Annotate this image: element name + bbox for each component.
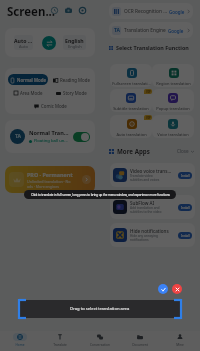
- staticText: Normal Mode: [17, 77, 46, 83]
- staticText: Normal Transla...: [29, 129, 71, 137]
- button[interactable]: TA: [109, 22, 193, 38]
- staticText: PRO · Permanent: [27, 171, 73, 178]
- staticText: Auto: [19, 44, 28, 49]
- staticText: SubFlow AI: [130, 200, 155, 206]
- button[interactable]: Swap languages: [42, 36, 56, 50]
- staticText: Auto translation: [116, 132, 147, 137]
- staticText: Google: [168, 28, 184, 34]
- button[interactable]: Close: [177, 148, 194, 154]
- button[interactable]: Confirm: [158, 284, 168, 294]
- staticText: Conversation: [90, 343, 110, 347]
- button[interactable]: Video voice trans...: [110, 163, 195, 187]
- staticText: Voice translation: [157, 132, 189, 137]
- staticText: Area Mode: [20, 90, 43, 96]
- staticText: VIP: [146, 90, 151, 94]
- staticText: ads · More engines: [27, 184, 59, 189]
- button[interactable]: Area Mode: [8, 87, 48, 98]
- button[interactable]: Reading Mode: [50, 74, 92, 85]
- staticText: VIP: [146, 116, 151, 120]
- staticText: Install: [181, 174, 190, 178]
- staticText: Hide notifications: [130, 228, 169, 234]
- staticText: Auto (...: [14, 37, 33, 44]
- staticText: Screen...: [7, 4, 56, 20]
- button[interactable]: Comic Mode: [29, 100, 71, 111]
- button[interactable]: History: [48, 4, 61, 17]
- staticText: Document: [132, 343, 148, 347]
- staticText: Fullscreen translati...: [112, 81, 151, 86]
- staticText: Install: [181, 206, 190, 210]
- button[interactable]: Normal Mode: [8, 74, 48, 85]
- staticText: English: [68, 44, 82, 49]
- button[interactable]: Region translation: [152, 64, 194, 87]
- button[interactable]: OCR Recognition ...: [109, 3, 193, 19]
- button[interactable]: Auto (...: [14, 35, 33, 50]
- staticText: Select Translation Function: [116, 44, 189, 51]
- staticText: Translation Engine: [124, 27, 166, 34]
- staticText: Comic Mode: [41, 103, 67, 109]
- button[interactable]: PRO · Permanent: [5, 166, 95, 193]
- button[interactable]: Install: [178, 232, 192, 239]
- button[interactable]: English: [63, 35, 86, 50]
- button[interactable]: Cancel: [172, 284, 182, 294]
- staticText: Drag to select translation area: [70, 306, 130, 312]
- button[interactable]: Auto translation: [110, 115, 152, 138]
- staticText: Reading Mode: [60, 77, 90, 83]
- staticText: Story Mode: [63, 90, 87, 96]
- button[interactable]: Mine: [160, 331, 200, 351]
- button[interactable]: Camera: [62, 4, 75, 17]
- button[interactable]: Story Mode: [50, 87, 92, 98]
- button[interactable]: Popup translation: [152, 89, 194, 112]
- button[interactable]: Document: [120, 331, 160, 351]
- staticText: Unlimited translation · No: [27, 179, 71, 184]
- staticText: TA: [15, 133, 21, 140]
- button[interactable]: TA: [5, 120, 95, 153]
- staticText: Popup translation: [156, 106, 190, 111]
- staticText: Home: [15, 343, 25, 347]
- staticText: Subtitle translation: [113, 106, 149, 111]
- staticText: Translate: [53, 343, 67, 347]
- staticText: Google: [169, 9, 185, 15]
- staticText: More Apps: [117, 147, 150, 155]
- staticText: OCR Recognition ...: [124, 8, 167, 15]
- button[interactable]: Voice translation: [152, 115, 194, 138]
- button[interactable]: Hide notifications: [110, 223, 195, 247]
- staticText: Mine: [176, 343, 184, 347]
- button[interactable]: Install: [178, 172, 192, 179]
- button[interactable]: SubFlow AI: [110, 195, 195, 219]
- button[interactable]: Subtitle translation: [110, 89, 152, 112]
- staticText: Translate video subtitles and voices: [130, 174, 160, 182]
- staticText: Close: [177, 148, 189, 154]
- staticText: Video voice trans...: [130, 168, 172, 174]
- staticText: TA: [114, 27, 120, 34]
- button[interactable]: Conversation: [80, 331, 120, 351]
- button[interactable]: Translate: [40, 331, 80, 351]
- staticText: Install: [181, 234, 190, 238]
- staticText: Floating ball un...: [34, 138, 68, 144]
- staticText: Region translation: [156, 81, 191, 86]
- staticText: English: [65, 37, 84, 44]
- staticText: Click to translate in full screen, long …: [31, 193, 170, 197]
- button[interactable]: Settings: [76, 4, 89, 17]
- staticText: Hide any annoying notifications: [130, 234, 158, 242]
- button[interactable]: Toggle translation: [73, 132, 90, 142]
- button[interactable]: Home: [0, 331, 40, 351]
- button[interactable]: Fullscreen translati...: [110, 64, 152, 87]
- button[interactable]: Install: [178, 204, 192, 211]
- staticText: Add translation and subtitles to the vid…: [130, 206, 162, 214]
